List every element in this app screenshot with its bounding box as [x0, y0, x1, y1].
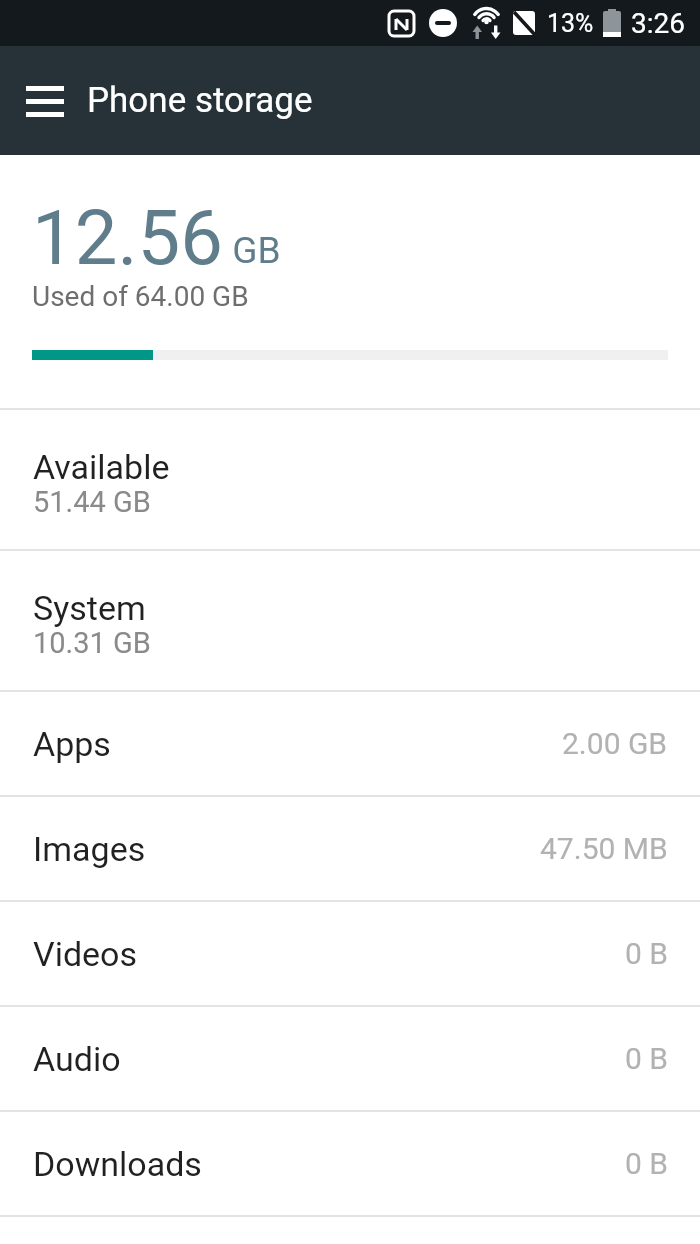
staticText: Images	[33, 829, 146, 869]
staticText: Phone storage	[87, 80, 313, 121]
button[interactable]: Images	[0, 797, 700, 900]
button[interactable]: Downloads	[0, 1112, 700, 1215]
button[interactable]: Videos	[0, 902, 700, 1005]
button[interactable]: Audio	[0, 1007, 700, 1110]
staticText: Apps	[33, 724, 111, 764]
staticText: 3:26	[631, 7, 685, 40]
staticText: 13%	[547, 9, 594, 38]
button[interactable]: Available	[0, 410, 700, 549]
staticText: Downloads	[33, 1144, 202, 1184]
staticText: Videos	[33, 934, 138, 974]
staticText: 0 B	[625, 1146, 668, 1181]
button[interactable]: System	[0, 551, 700, 690]
staticText: 12.56	[32, 193, 223, 282]
staticText: System	[33, 588, 146, 628]
staticText: 51.44 GB	[33, 485, 151, 519]
staticText: 2.00 GB	[562, 726, 668, 761]
staticText: GB	[223, 229, 281, 272]
staticText: Used of 64.00 GB	[32, 280, 249, 313]
staticText: 0 B	[625, 936, 668, 971]
staticText: Audio	[33, 1039, 121, 1079]
button[interactable]: Apps	[0, 692, 700, 795]
staticText: 10.31 GB	[33, 626, 151, 660]
staticText: 0 B	[625, 1041, 668, 1076]
staticText: 47.50 MB	[540, 831, 668, 866]
button[interactable]	[14, 70, 76, 132]
staticText: Available	[33, 447, 170, 487]
